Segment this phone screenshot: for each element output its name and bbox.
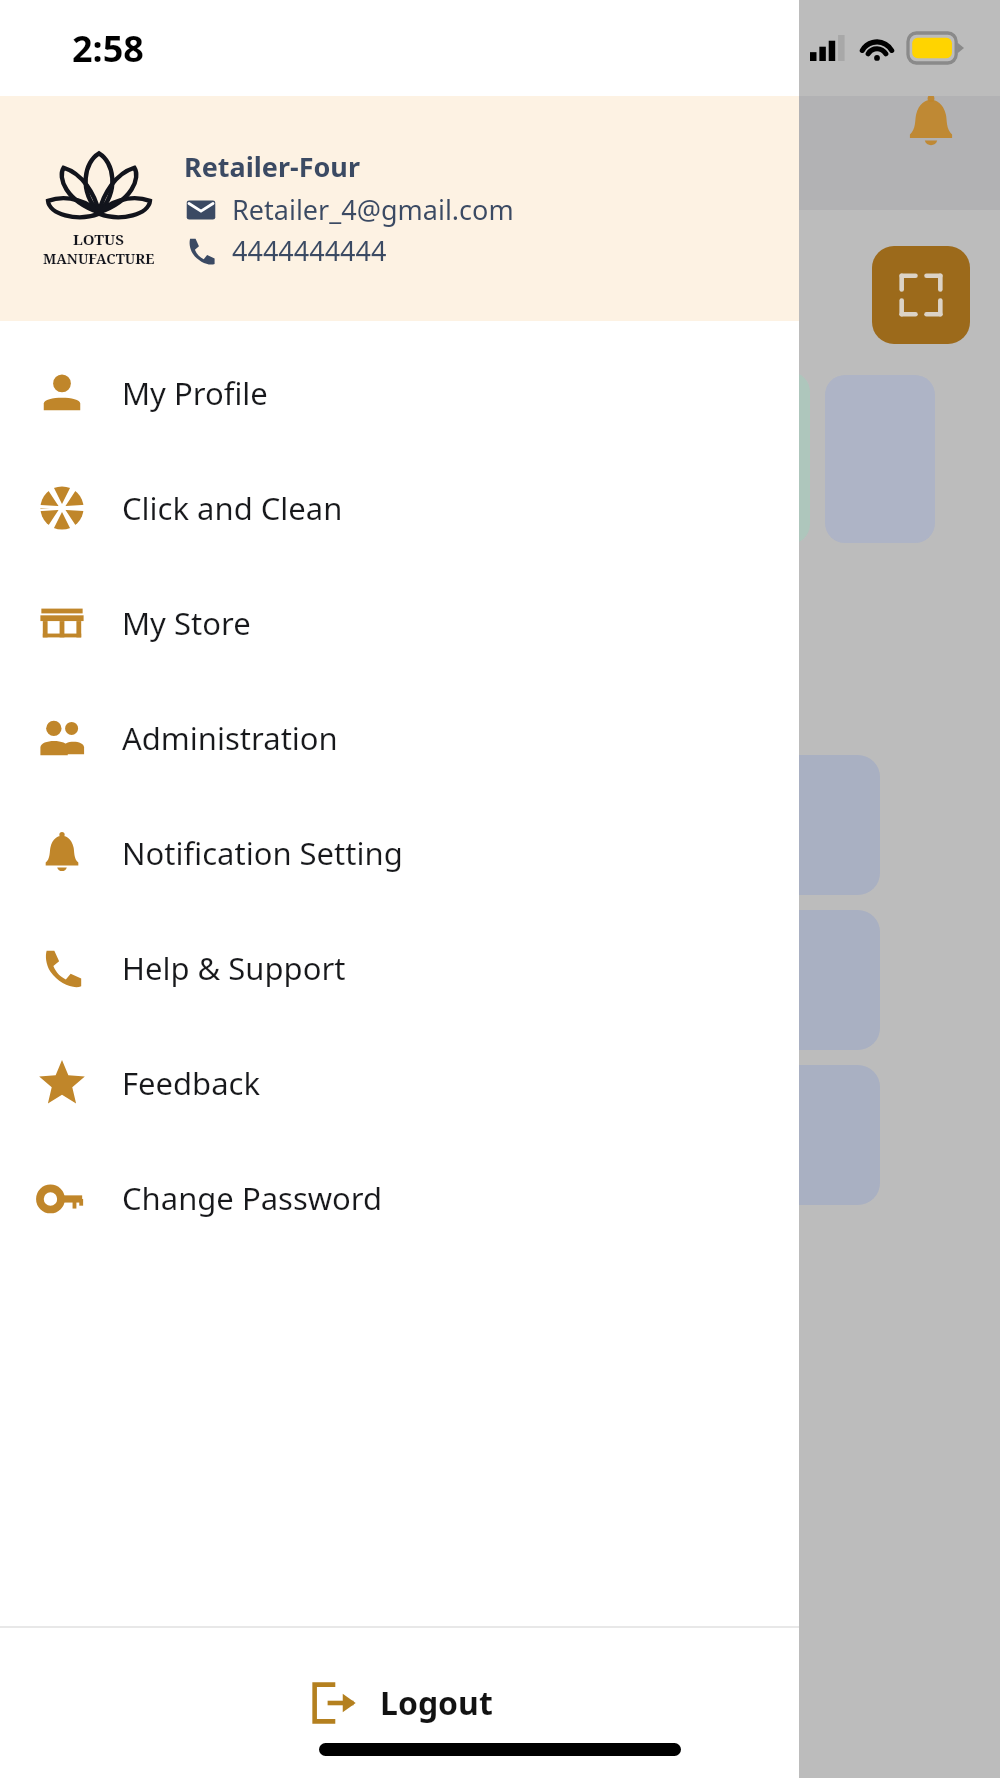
staticText: My Store xyxy=(122,602,251,644)
button[interactable]: My Profile xyxy=(0,335,799,450)
button[interactable]: Scan xyxy=(872,246,970,344)
staticText: Help & Support xyxy=(122,947,346,989)
button[interactable]: Notification Setting xyxy=(0,795,799,910)
staticText: Click and Clean xyxy=(122,487,343,529)
button[interactable]: LOTUS xyxy=(0,96,799,321)
staticText: Feedback xyxy=(122,1062,261,1104)
staticText: LOTUS xyxy=(73,229,125,249)
button[interactable]: Logout xyxy=(0,1628,799,1778)
staticText: Notification Setting xyxy=(122,832,403,874)
button[interactable]: Notifications xyxy=(900,91,962,153)
button[interactable]: Click and Clean xyxy=(0,450,799,565)
staticText: MANUFACTURE xyxy=(43,249,155,268)
staticText: Change Password xyxy=(122,1177,383,1219)
button[interactable]: My Store xyxy=(0,565,799,680)
button[interactable]: Administration xyxy=(0,680,799,795)
button[interactable]: Feedback xyxy=(0,1025,799,1140)
staticText: Logout xyxy=(380,1681,493,1725)
button[interactable]: Help & Support xyxy=(0,910,799,1025)
staticText: 8 xyxy=(947,27,958,53)
staticText: My Profile xyxy=(122,372,268,414)
staticText: Retailer_4@gmail.com xyxy=(232,191,514,228)
staticText: Retailer-Four xyxy=(184,148,360,185)
staticText: 4444444444 xyxy=(232,232,387,269)
staticText: Administration xyxy=(122,717,338,759)
staticText: 2:58 xyxy=(72,24,144,73)
button[interactable]: Change Password xyxy=(0,1140,799,1255)
